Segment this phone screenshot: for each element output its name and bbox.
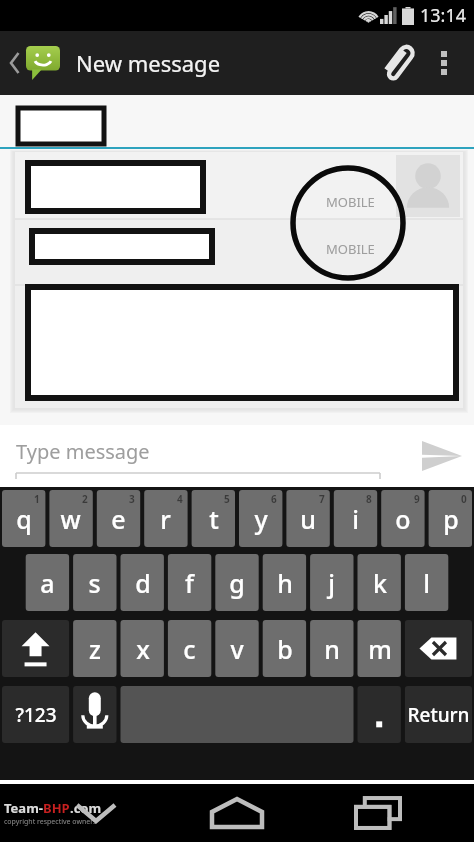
staticText: 7 — [319, 492, 325, 506]
button[interactable]: Recent apps — [333, 789, 423, 837]
button[interactable]: Shift — [2, 620, 69, 677]
staticText: m — [368, 632, 392, 666]
button[interactable]: j — [310, 554, 353, 611]
staticText: Type message — [16, 438, 150, 465]
staticText: t — [209, 502, 219, 536]
staticText: n — [324, 632, 340, 666]
staticText: 1 — [34, 492, 40, 506]
button[interactable]: i — [334, 490, 377, 547]
staticText: f — [185, 566, 194, 600]
button[interactable]: Return — [405, 686, 472, 743]
button[interactable]: Period — [358, 686, 401, 743]
button[interactable]: y — [239, 490, 282, 547]
button[interactable]: More options — [422, 41, 466, 85]
staticText: ?123 — [15, 702, 57, 728]
button[interactable]: g — [215, 554, 258, 611]
staticText: a — [40, 566, 55, 600]
staticText: q — [16, 502, 32, 536]
button[interactable]: n — [310, 620, 353, 677]
staticText: w — [60, 502, 81, 536]
staticText: 4 — [177, 492, 183, 506]
button[interactable]: Attach — [370, 37, 422, 89]
staticText: Return — [407, 702, 470, 728]
staticText: 0 — [461, 492, 467, 506]
staticText: c — [183, 632, 196, 666]
staticText: 9 — [414, 492, 420, 506]
button[interactable]: h — [263, 554, 306, 611]
button[interactable]: w — [49, 490, 92, 547]
button[interactable]: d — [121, 554, 164, 611]
button[interactable]: f — [168, 554, 211, 611]
staticText: copyright respective owners — [4, 817, 97, 827]
button[interactable]: x — [121, 620, 164, 677]
button[interactable]: b — [263, 620, 306, 677]
staticText: MOBILE — [326, 240, 375, 258]
staticText: s — [88, 566, 101, 600]
staticText: k — [373, 566, 387, 600]
staticText: BHP — [43, 799, 70, 817]
button[interactable]: u — [286, 490, 329, 547]
staticText: .com — [70, 799, 102, 817]
staticText: 3 — [129, 492, 135, 506]
staticText: 2 — [82, 492, 88, 506]
button[interactable]: Home — [192, 789, 282, 837]
staticText: v — [230, 632, 244, 666]
button[interactable]: e — [97, 490, 140, 547]
button[interactable]: Type message — [16, 438, 380, 475]
button[interactable]: o — [381, 490, 424, 547]
button[interactable]: m — [358, 620, 401, 677]
button[interactable]: Voice input — [73, 686, 116, 743]
staticText: x — [136, 632, 150, 666]
button[interactable]: q — [2, 490, 45, 547]
staticText: 13:14 — [420, 3, 467, 28]
button[interactable]: p — [429, 490, 472, 547]
staticText: New message — [76, 48, 221, 78]
staticText: MOBILE — [326, 193, 375, 211]
staticText: o — [395, 502, 411, 536]
staticText: p — [443, 502, 459, 536]
staticText: u — [300, 502, 316, 536]
button[interactable]: Send — [410, 425, 474, 487]
staticText: 6 — [271, 492, 277, 506]
staticText: Team- — [4, 799, 43, 817]
button[interactable]: t — [192, 490, 235, 547]
staticText: l — [423, 566, 430, 600]
button[interactable]: c — [168, 620, 211, 677]
button[interactable]: l — [405, 554, 448, 611]
button[interactable]: Navigate up — [4, 46, 66, 80]
staticText: z — [89, 632, 101, 666]
button[interactable]: a — [26, 554, 69, 611]
staticText: 5 — [224, 492, 230, 506]
staticText: 8 — [366, 492, 372, 506]
button[interactable]: k — [358, 554, 401, 611]
button[interactable]: s — [73, 554, 116, 611]
button[interactable]: Hide keyboard — [51, 789, 141, 837]
button[interactable]: z — [73, 620, 116, 677]
staticText: e — [111, 502, 126, 536]
staticText: b — [277, 632, 293, 666]
button[interactable]: v — [215, 620, 258, 677]
button[interactable]: r — [144, 490, 187, 547]
staticText: h — [277, 566, 293, 600]
staticText: j — [328, 566, 335, 600]
button[interactable]: Backspace — [405, 620, 472, 677]
staticText: d — [135, 566, 151, 600]
staticText: y — [254, 502, 268, 536]
button[interactable]: ?123 — [2, 686, 69, 743]
staticText: g — [229, 566, 245, 600]
staticText: r — [160, 502, 171, 536]
staticText: i — [352, 502, 359, 536]
